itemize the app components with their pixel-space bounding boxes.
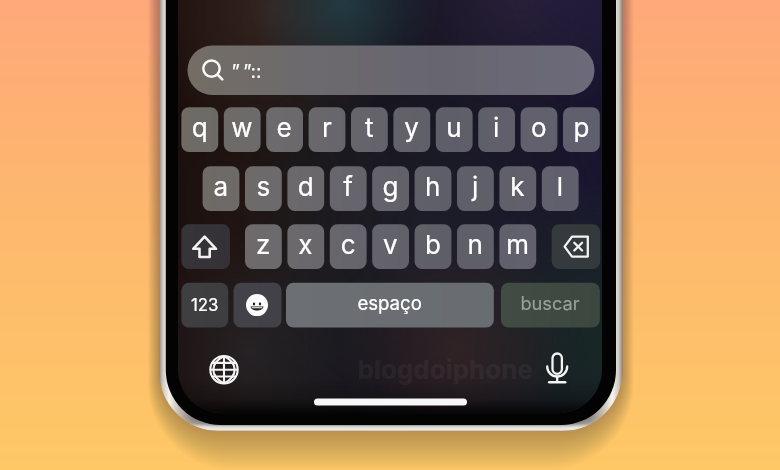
button[interactable] [0,0,780,470]
